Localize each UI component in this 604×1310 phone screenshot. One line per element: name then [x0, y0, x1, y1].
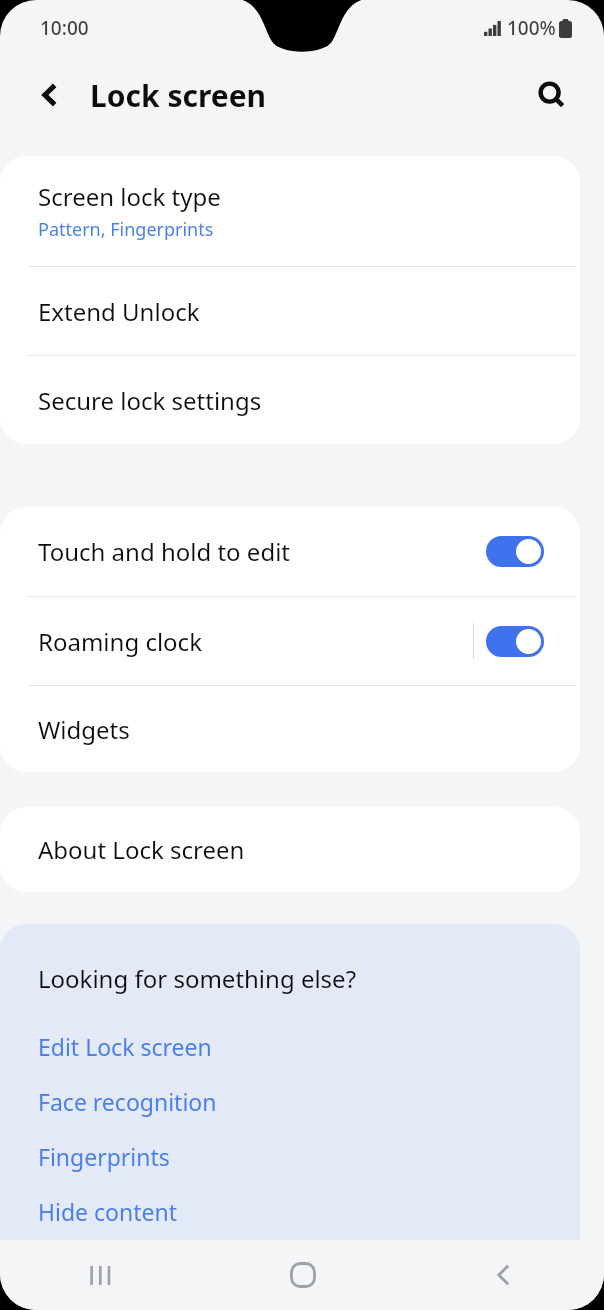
button[interactable]: Roaming clock: [0, 597, 580, 685]
button[interactable]: Touch and hold to edit: [486, 536, 544, 567]
staticText: Extend Unlock: [38, 295, 200, 328]
button[interactable]: About Lock screen: [0, 807, 580, 892]
staticText: Fingerprints: [38, 1141, 170, 1172]
button[interactable]: Widgets: [0, 686, 580, 772]
button[interactable]: Screen lock type: [0, 156, 580, 266]
staticText: Widgets: [38, 713, 130, 746]
staticText: Hide content: [38, 1196, 178, 1227]
staticText: Face recognition: [38, 1086, 217, 1117]
button[interactable]: Fingerprints: [0, 1129, 580, 1184]
staticText: 10:00: [40, 15, 89, 41]
staticText: Edit Lock screen: [38, 1031, 212, 1062]
staticText: Looking for something else?: [38, 962, 357, 995]
button[interactable]: Back: [22, 67, 78, 123]
staticText: Touch and hold to edit: [38, 535, 291, 568]
button[interactable]: Extend Unlock: [0, 267, 580, 355]
button[interactable]: Back: [403, 1240, 604, 1310]
button[interactable]: Hide content: [0, 1184, 580, 1239]
button[interactable]: Edit Lock screen: [0, 1019, 580, 1074]
button[interactable]: Secure lock settings: [0, 356, 580, 444]
staticText: Roaming clock: [38, 625, 202, 658]
staticText: About Lock screen: [38, 833, 245, 866]
button[interactable]: Search: [524, 67, 580, 123]
button[interactable]: Touch and hold to edit: [0, 507, 580, 596]
staticText: Screen lock type: [38, 180, 221, 213]
button[interactable]: Home: [202, 1240, 403, 1310]
button[interactable]: Recents: [0, 1240, 202, 1310]
staticText: Secure lock settings: [38, 384, 262, 417]
staticText: Pattern, Fingerprints: [38, 217, 214, 242]
staticText: Lock screen: [90, 75, 267, 116]
staticText: 100%: [507, 15, 556, 41]
button[interactable]: Face recognition: [0, 1074, 580, 1129]
button[interactable]: Roaming clock: [486, 626, 544, 657]
